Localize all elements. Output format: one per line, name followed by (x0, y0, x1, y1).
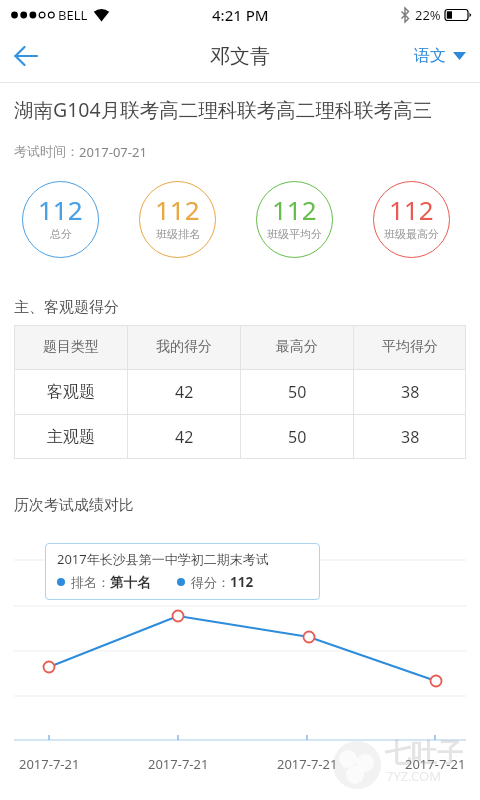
staticText: 七吐子 (385, 737, 463, 770)
staticText: 112 (272, 192, 317, 227)
staticText: 38 (401, 381, 420, 403)
staticText: 50 (288, 426, 307, 448)
staticText: 平均得分 (382, 338, 438, 356)
staticText: 得分： (191, 574, 230, 590)
staticText: 7YZ.COM (386, 767, 441, 785)
button[interactable]: 112 (139, 181, 216, 258)
staticText: 最高分 (276, 338, 318, 356)
button[interactable]: 112 (22, 181, 99, 258)
staticText: 2017年长沙县第一中学初二期末考试 (57, 550, 269, 568)
staticText: 主、客观题得分 (14, 298, 119, 317)
staticText: BELL (58, 6, 88, 24)
staticText: 2017-7-21 (19, 755, 80, 773)
staticText: 50 (288, 381, 307, 403)
staticText: 排名： (71, 574, 110, 590)
staticText: 班级最高分 (384, 227, 439, 241)
staticText: 班级排名 (156, 227, 200, 241)
staticText: 2017-07-21 (79, 143, 147, 161)
button[interactable]: 题目类型 (14, 325, 466, 369)
staticText: 2017-7-21 (405, 755, 466, 773)
staticText: 22% (415, 6, 441, 24)
button[interactable]: 112 (373, 181, 450, 258)
button[interactable]: 客观题 (14, 370, 466, 414)
button[interactable]: 2017年长沙县第一中学初二期末考试 (57, 550, 320, 600)
staticText: 题目类型 (43, 338, 99, 356)
button[interactable] (6, 36, 46, 76)
staticText: 我的得分 (156, 338, 212, 356)
staticText: 4:21 PM (212, 5, 269, 25)
staticText: 42 (175, 381, 194, 403)
staticText: 第十名 (110, 574, 151, 591)
staticText: 总分 (50, 227, 72, 241)
staticText: 历次考试成绩对比 (14, 496, 134, 515)
button[interactable]: 主观题 (14, 415, 466, 459)
staticText: 2017-7-21 (148, 755, 209, 773)
button[interactable]: 语文 (414, 46, 466, 66)
staticText: 42 (175, 426, 194, 448)
staticText: 2017-7-21 (277, 755, 338, 773)
staticText: 考试时间： (14, 143, 79, 159)
staticText: 112 (230, 573, 254, 591)
staticText: 38 (401, 426, 420, 448)
staticText: 班级平均分 (267, 227, 322, 241)
staticText: 邓文青 (210, 44, 270, 69)
staticText: 客观题 (47, 382, 95, 402)
button[interactable]: 112 (256, 181, 333, 258)
staticText: 112 (155, 192, 200, 227)
staticText: 主观题 (47, 427, 95, 447)
staticText: 112 (38, 192, 83, 227)
staticText: 语文 (414, 46, 446, 66)
staticText: 湖南G104月联考高二理科联考高二理科联考高三 (14, 96, 433, 123)
staticText: 112 (389, 192, 434, 227)
